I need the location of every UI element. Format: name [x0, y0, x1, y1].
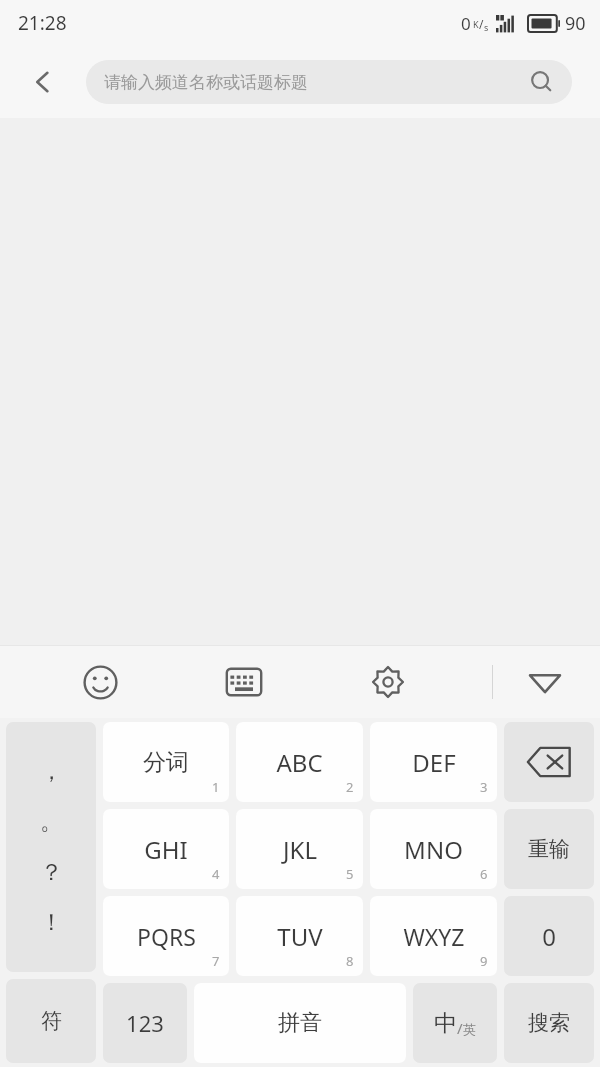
button[interactable]: JKL	[236, 809, 363, 889]
button[interactable]: Hide keyboard	[517, 654, 573, 710]
button[interactable]: MNO	[370, 809, 497, 889]
staticText: JKL	[283, 833, 317, 866]
button[interactable]: WXYZ	[370, 896, 497, 976]
staticText: 2	[346, 778, 354, 796]
staticText: 英	[463, 1021, 476, 1037]
staticText: 0	[542, 920, 556, 953]
button[interactable]: Keyboard layout	[216, 654, 272, 710]
staticText: 搜索	[528, 1010, 570, 1036]
staticText: 分词	[143, 748, 189, 777]
staticText: GHI	[144, 833, 188, 866]
staticText: MNO	[404, 833, 463, 866]
button[interactable]: ABC	[236, 722, 363, 802]
staticText: 21:28	[18, 10, 67, 36]
button[interactable]: Back	[16, 55, 70, 109]
staticText: PQRS	[137, 921, 196, 952]
staticText: 6	[480, 865, 488, 883]
button[interactable]: Backspace	[504, 722, 594, 802]
staticText: 9	[480, 952, 488, 970]
staticText: 123	[126, 1008, 164, 1038]
button[interactable]: 搜索	[504, 983, 594, 1063]
staticText: 重输	[528, 836, 570, 862]
button[interactable]: Settings	[360, 654, 416, 710]
staticText: ！	[40, 908, 63, 937]
staticText: 拼音	[278, 1009, 322, 1037]
button[interactable]: 符	[6, 979, 96, 1063]
staticText: s	[484, 21, 489, 33]
staticText: 中	[434, 1009, 457, 1038]
staticText: TUV	[277, 920, 323, 953]
staticText: ABC	[276, 746, 323, 779]
staticText: ，	[40, 757, 63, 786]
button[interactable]: TUV	[236, 896, 363, 976]
button[interactable]: 分词	[103, 722, 229, 802]
button[interactable]: PQRS	[103, 896, 229, 976]
staticText: 请输入频道名称或话题标题	[104, 72, 530, 93]
staticText: K	[473, 18, 479, 30]
staticText: 符	[41, 1008, 62, 1034]
button[interactable]: Emoji	[72, 654, 128, 710]
button[interactable]: 请输入频道名称或话题标题	[86, 60, 572, 104]
staticText: 1	[212, 778, 220, 796]
staticText: 5	[346, 865, 354, 883]
button[interactable]: 123	[103, 983, 187, 1063]
staticText: 0	[461, 12, 471, 35]
button[interactable]: 中	[413, 983, 497, 1063]
staticText: /	[479, 16, 484, 32]
staticText: DEF	[412, 746, 456, 779]
staticText: 3	[480, 778, 488, 796]
staticText: /	[457, 1018, 463, 1038]
staticText: 90	[565, 11, 586, 36]
staticText: 7	[212, 952, 220, 970]
button[interactable]: 拼音	[194, 983, 406, 1063]
staticText: ？	[40, 858, 63, 887]
staticText: 8	[346, 952, 354, 970]
button[interactable]: 重输	[504, 809, 594, 889]
button[interactable]: 0	[504, 896, 594, 976]
staticText: 4	[212, 865, 220, 883]
button[interactable]: GHI	[103, 809, 229, 889]
staticText: 。	[40, 807, 63, 836]
button[interactable]: ，	[6, 722, 96, 972]
button[interactable]: DEF	[370, 722, 497, 802]
staticText: WXYZ	[403, 921, 465, 952]
